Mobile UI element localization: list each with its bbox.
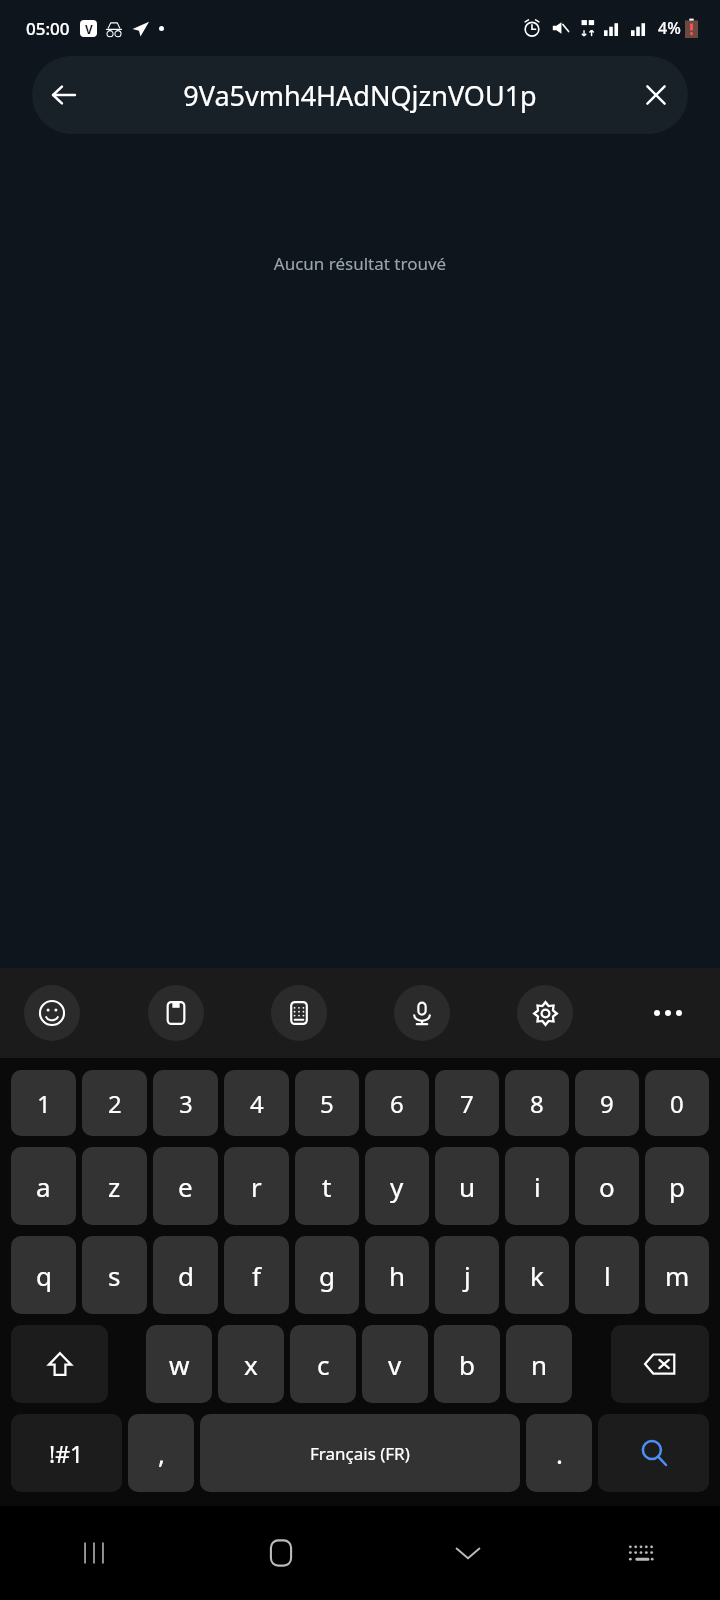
button[interactable]: u [435, 1147, 499, 1225]
staticText: Aucun résultat trouvé [0, 252, 720, 275]
button[interactable]: n [506, 1325, 572, 1403]
staticText: n [531, 1347, 548, 1382]
button[interactable]: j [435, 1236, 499, 1314]
button[interactable]: x [218, 1325, 284, 1403]
button[interactable]: h [365, 1236, 429, 1314]
button[interactable]: Hide keyboard [374, 1506, 561, 1600]
staticText: o [599, 1169, 615, 1204]
button[interactable]: More options [640, 985, 696, 1041]
button[interactable]: k [505, 1236, 569, 1314]
staticText: j [464, 1258, 471, 1293]
staticText: i [534, 1169, 541, 1204]
staticText: k [530, 1258, 544, 1293]
button[interactable]: 5 [295, 1070, 359, 1136]
staticText: !#1 [49, 1438, 84, 1469]
button[interactable]: . [526, 1414, 592, 1492]
staticText: t [322, 1169, 332, 1204]
button[interactable]: 6 [365, 1070, 429, 1136]
staticText: e [178, 1169, 193, 1204]
button[interactable]: g [295, 1236, 359, 1314]
staticText: v [388, 1347, 402, 1382]
button[interactable]: 3 [153, 1070, 218, 1136]
staticText: c [317, 1347, 330, 1382]
button[interactable]: Recents [0, 1506, 187, 1600]
button[interactable]: 9 [575, 1070, 639, 1136]
staticText: 4 [250, 1087, 264, 1120]
button[interactable]: Français (FR) [200, 1414, 520, 1492]
button[interactable]: r [224, 1147, 289, 1225]
staticText: 05:00 [26, 17, 70, 40]
button[interactable]: Voice input [394, 985, 450, 1041]
staticText: m [665, 1258, 690, 1293]
staticText: x [244, 1347, 258, 1382]
button[interactable]: v [362, 1325, 428, 1403]
staticText: 7 [460, 1087, 474, 1120]
button[interactable]: !#1 [11, 1414, 122, 1492]
button[interactable]: Back [32, 63, 96, 127]
staticText: r [251, 1169, 262, 1204]
button[interactable]: c [290, 1325, 356, 1403]
staticText: y [390, 1169, 404, 1204]
button[interactable]: 8 [505, 1070, 569, 1136]
button[interactable]: o [575, 1147, 639, 1225]
staticText: , [158, 1436, 165, 1471]
button[interactable]: b [434, 1325, 500, 1403]
staticText: u [459, 1169, 476, 1204]
staticText: s [108, 1258, 121, 1293]
button[interactable]: m [645, 1236, 709, 1314]
button[interactable]: Search [598, 1414, 709, 1492]
staticText: V [85, 21, 93, 37]
button[interactable]: Clipboard [148, 985, 204, 1041]
button[interactable]: d [153, 1236, 218, 1314]
button[interactable]: Home [187, 1506, 374, 1600]
staticText: . [556, 1436, 563, 1471]
staticText: 2 [108, 1087, 122, 1120]
button[interactable]: i [505, 1147, 569, 1225]
button[interactable]: Backspace [611, 1325, 709, 1403]
button[interactable]: Emoji [24, 985, 80, 1041]
button[interactable]: 7 [435, 1070, 499, 1136]
button[interactable]: Keyboard modes [271, 985, 327, 1041]
staticText: 5 [320, 1087, 334, 1120]
button[interactable]: z [82, 1147, 147, 1225]
staticText: 4% [658, 17, 681, 39]
staticText: a [36, 1169, 51, 1204]
staticText: Français (FR) [310, 1442, 410, 1465]
button[interactable]: Shift [11, 1325, 108, 1403]
staticText: 9 [600, 1087, 614, 1120]
staticText: h [389, 1258, 406, 1293]
button[interactable]: s [82, 1236, 147, 1314]
button[interactable]: Settings [517, 985, 573, 1041]
button[interactable]: f [224, 1236, 289, 1314]
button[interactable]: Switch keyboard [561, 1506, 720, 1600]
staticText: 1 [37, 1087, 51, 1120]
staticText: 0 [670, 1087, 684, 1120]
staticText: z [108, 1169, 121, 1204]
button[interactable]: q [11, 1236, 76, 1314]
button[interactable]: a [11, 1147, 76, 1225]
button[interactable]: y [365, 1147, 429, 1225]
button[interactable]: Clear [624, 63, 688, 127]
button[interactable]: 0 [645, 1070, 709, 1136]
button[interactable]: 2 [82, 1070, 147, 1136]
staticText: q [36, 1258, 52, 1293]
staticText: b [459, 1347, 475, 1382]
button[interactable]: w [146, 1325, 212, 1403]
button[interactable]: p [645, 1147, 709, 1225]
staticText: 6 [390, 1087, 404, 1120]
button[interactable]: t [295, 1147, 359, 1225]
staticText: 9Va5vmh4HAdNQjznVOU1p [96, 77, 624, 114]
button[interactable]: , [128, 1414, 194, 1492]
button[interactable]: 1 [11, 1070, 76, 1136]
button[interactable]: l [575, 1236, 639, 1314]
staticText: d [178, 1258, 194, 1293]
staticText: p [669, 1169, 685, 1204]
staticText: f [252, 1258, 261, 1293]
button[interactable]: e [153, 1147, 218, 1225]
staticText: w [169, 1347, 190, 1382]
staticText: 8 [530, 1087, 544, 1120]
staticText: 3 [179, 1087, 193, 1120]
staticText: l [604, 1258, 611, 1293]
button[interactable]: 4 [224, 1070, 289, 1136]
staticText: g [319, 1258, 335, 1293]
